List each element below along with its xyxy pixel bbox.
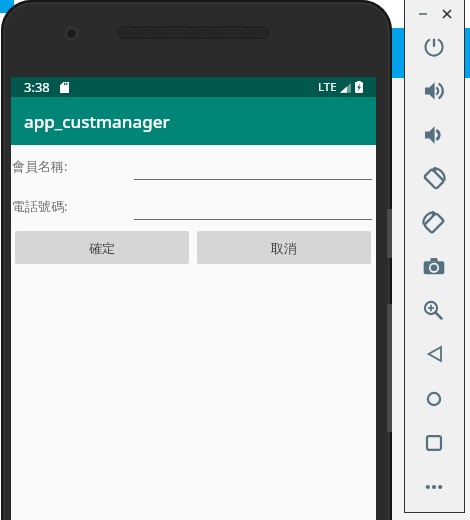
button[interactable]: Rotate left	[417, 162, 451, 196]
button[interactable]: Zoom in	[417, 293, 451, 327]
button[interactable]: Power	[417, 30, 451, 64]
button[interactable]: Rotate right	[417, 206, 451, 240]
staticText: 會員名稱:	[12, 157, 68, 175]
staticText: 電話號碼:	[12, 197, 68, 215]
staticText: LTE	[318, 79, 337, 95]
button[interactable]: Take screenshot	[417, 249, 451, 283]
button[interactable]: More options	[417, 470, 451, 504]
button[interactable]: 確定	[15, 231, 189, 264]
button[interactable]: Volume up	[417, 74, 451, 108]
staticText: app_custmanager	[24, 110, 170, 133]
staticText: 確定	[89, 240, 115, 256]
staticText: 取消	[271, 240, 297, 256]
button[interactable]: Close	[436, 3, 458, 24]
button[interactable]: Recent apps	[417, 426, 451, 460]
button[interactable]: Volume down	[417, 118, 451, 152]
button[interactable]: Minimize	[412, 3, 434, 24]
button[interactable]: 取消	[197, 231, 371, 264]
button[interactable]: Home	[417, 382, 451, 416]
staticText: 3:38	[24, 78, 50, 96]
button[interactable]: Back	[417, 337, 451, 371]
